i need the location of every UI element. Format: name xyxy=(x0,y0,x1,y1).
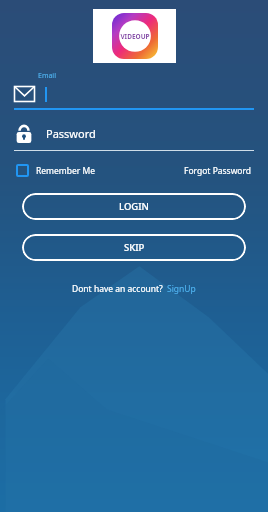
button[interactable]: SignUp xyxy=(167,283,196,295)
staticText: Remember Me xyxy=(36,165,96,177)
other: Email xyxy=(14,86,35,102)
staticText: SignUp xyxy=(167,283,196,295)
staticText: LOGIN xyxy=(119,200,149,213)
staticText: Password xyxy=(46,126,96,141)
staticText: VIDEOUP xyxy=(120,32,150,41)
button[interactable]: SKIP xyxy=(22,234,246,261)
button[interactable]: Password xyxy=(16,124,254,143)
button[interactable]: Remember Me xyxy=(16,164,96,177)
other: Password xyxy=(16,124,32,143)
button[interactable]: Forgot Password xyxy=(184,165,252,177)
staticText: SKIP xyxy=(124,241,145,254)
staticText: Dont have an account? xyxy=(72,283,163,295)
button[interactable]: Email xyxy=(14,86,254,102)
staticText: Email xyxy=(38,71,56,81)
staticText: Forgot Password xyxy=(184,165,252,177)
button[interactable]: LOGIN xyxy=(22,193,246,220)
